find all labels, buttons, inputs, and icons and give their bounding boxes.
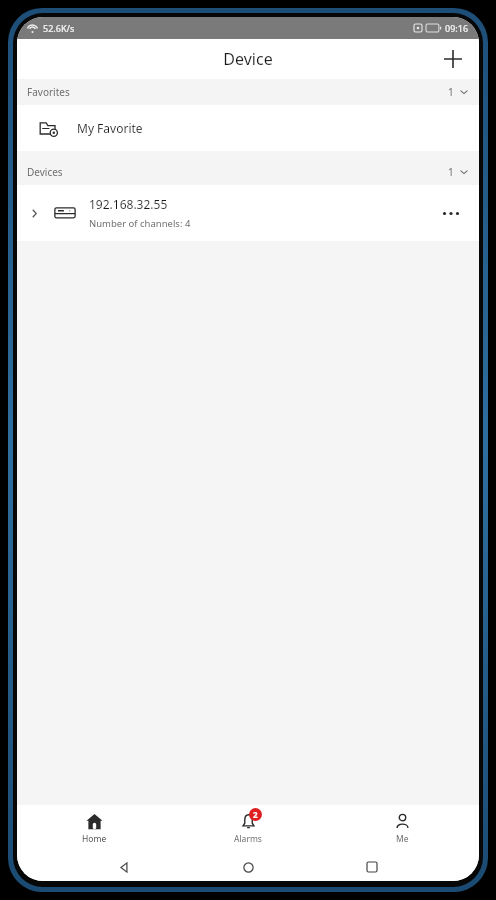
staticText: Device (223, 48, 273, 70)
staticText: Me (396, 833, 409, 845)
staticText: 2 (253, 809, 258, 820)
staticText: Home (82, 833, 107, 845)
staticText: Number of channels: 4 (89, 217, 191, 230)
button[interactable]: Home (231, 853, 265, 881)
staticText: 52.6K/s (43, 22, 75, 34)
staticText: Devices (27, 165, 63, 179)
staticText: 1 (448, 85, 454, 99)
button[interactable]: More options (435, 197, 467, 229)
staticText: 1 (448, 165, 454, 179)
button[interactable]: Favorites (17, 79, 479, 105)
button[interactable]: 2 (171, 805, 325, 853)
button[interactable]: Expand (24, 203, 44, 223)
staticText: 09:16 (445, 22, 469, 34)
staticText: Alarms (234, 833, 262, 845)
button[interactable]: Back (107, 853, 141, 881)
button[interactable]: Home (17, 805, 171, 853)
button[interactable]: Expand (17, 185, 479, 241)
button[interactable]: Me (325, 805, 479, 853)
staticText: My Favorite (77, 120, 143, 136)
button[interactable]: Add device (433, 39, 473, 79)
button[interactable]: My Favorite (17, 105, 479, 151)
staticText: Favorites (27, 85, 70, 99)
button[interactable]: Devices (17, 159, 479, 185)
button[interactable]: Recent apps (355, 853, 389, 881)
staticText: 192.168.32.55 (89, 196, 168, 212)
